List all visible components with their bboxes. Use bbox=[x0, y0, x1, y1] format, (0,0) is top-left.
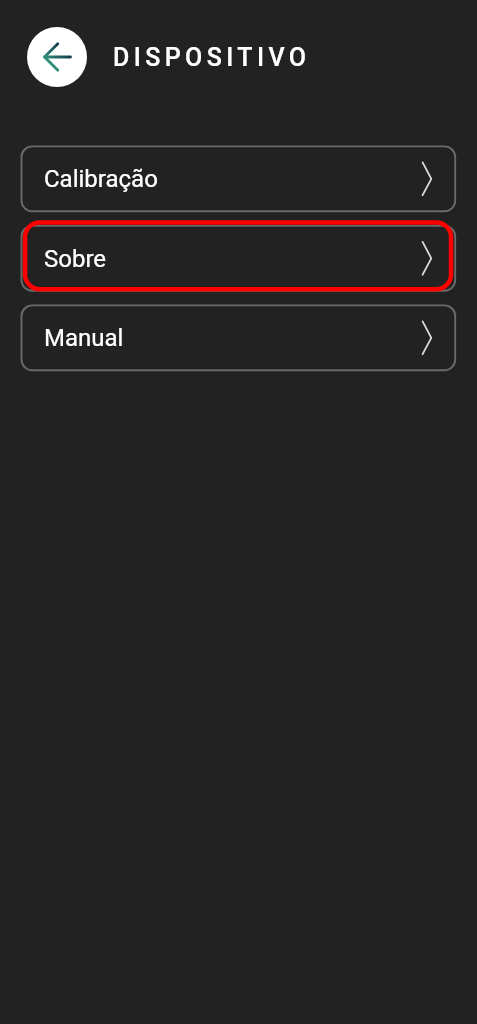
button[interactable]: Sobre bbox=[21, 225, 457, 292]
button[interactable]: Back bbox=[27, 27, 87, 87]
button[interactable]: Manual bbox=[21, 304, 457, 371]
staticText: Manual bbox=[44, 324, 124, 352]
button[interactable]: Calibração bbox=[21, 145, 457, 212]
staticText: Calibração bbox=[44, 165, 158, 193]
staticText: Sobre bbox=[44, 245, 107, 273]
staticText: DISPOSITIVO bbox=[113, 43, 311, 72]
